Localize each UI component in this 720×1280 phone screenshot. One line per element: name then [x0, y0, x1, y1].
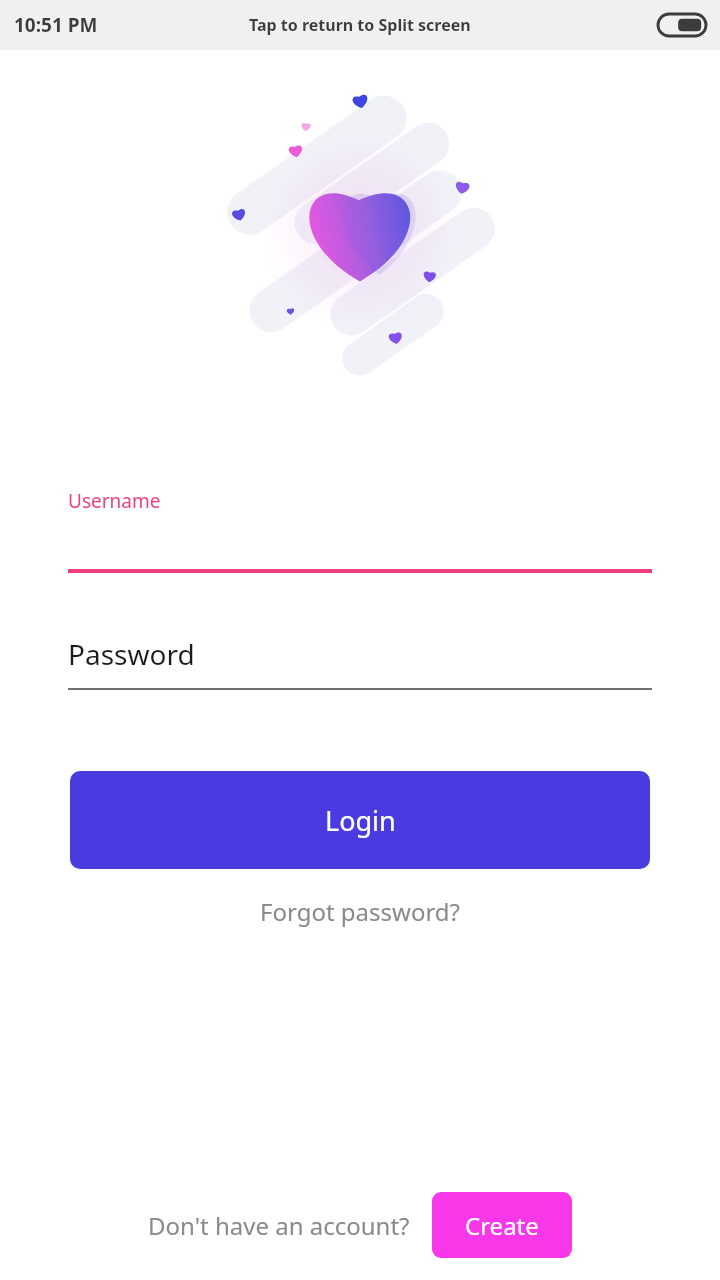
staticText: Create [465, 1209, 539, 1242]
staticText: Password [68, 635, 195, 673]
staticText: 10:51 PM [14, 12, 98, 38]
button[interactable]: Login [70, 771, 650, 869]
other: Battery [658, 14, 706, 36]
staticText: Login [325, 802, 396, 839]
button[interactable]: Username [68, 488, 652, 573]
button[interactable]: Password [68, 635, 652, 690]
staticText: Username [68, 488, 161, 514]
staticText: Don't have an account? [148, 1209, 410, 1242]
staticText: Forgot password? [260, 895, 461, 928]
button[interactable]: Forgot password? [248, 889, 473, 934]
staticText: Tap to return to Split screen [249, 14, 471, 36]
button[interactable]: Create [432, 1192, 572, 1258]
